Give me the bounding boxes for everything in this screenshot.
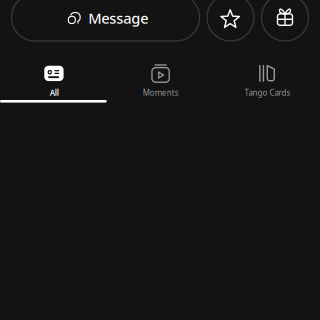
button[interactable]: Gifts <box>261 0 308 41</box>
button[interactable]: Favorites <box>207 0 254 41</box>
button[interactable]: All <box>0 62 107 100</box>
button[interactable]: Message <box>11 0 199 41</box>
button[interactable]: Moments <box>107 62 213 100</box>
staticText: All <box>50 87 59 98</box>
staticText: Tango Cards <box>244 87 290 98</box>
staticText: Moments <box>143 87 179 98</box>
staticText: Message <box>88 8 148 28</box>
button[interactable]: Tango Cards <box>213 62 320 100</box>
